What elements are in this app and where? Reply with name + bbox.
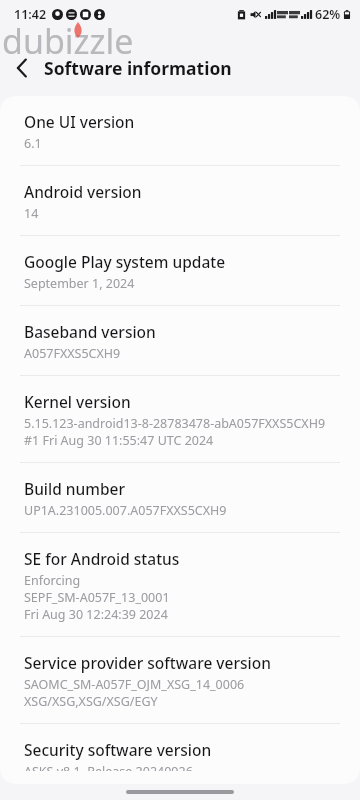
- staticText: dubizzle: [2, 18, 134, 64]
- staticText: Android version: [24, 181, 142, 202]
- button[interactable]: Service provider software version: [0, 637, 360, 723]
- button[interactable]: SE for Android status: [0, 533, 360, 636]
- staticText: Security software version: [24, 739, 212, 760]
- staticText: 14: [24, 205, 39, 222]
- staticText: XSG/XSG,XSG/XSG/EGY: [24, 693, 158, 710]
- staticText: Service provider software version: [24, 652, 271, 673]
- staticText: Fri Aug 30 12:24:39 2024: [24, 606, 168, 623]
- staticText: 11:42: [14, 6, 47, 23]
- staticText: September 1, 2024: [24, 275, 135, 292]
- staticText: 6.1: [24, 135, 42, 152]
- staticText: Google Play system update: [24, 251, 226, 272]
- staticText: Enforcing: [24, 572, 81, 589]
- staticText: Build number: [24, 478, 126, 499]
- staticText: ASKS v8.1 Release 20240926: [24, 763, 193, 771]
- staticText: SEPF_SM-A057F_13_0001: [24, 589, 170, 606]
- button[interactable]: Build number: [0, 463, 360, 532]
- staticText: A057FXXS5CXH9: [24, 345, 121, 362]
- button[interactable]: Google Play system update: [0, 236, 360, 305]
- staticText: 62%: [315, 6, 341, 23]
- staticText: #1 Fri Aug 30 11:55:47 UTC 2024: [24, 432, 214, 449]
- button[interactable]: Security software version: [0, 724, 360, 784]
- staticText: SAOMC_SM-A057F_OJM_XSG_14_0006: [24, 676, 245, 693]
- button[interactable]: Baseband version: [0, 306, 360, 375]
- staticText: Kernel version: [24, 391, 131, 412]
- button[interactable]: Android version: [0, 166, 360, 235]
- staticText: One UI version: [24, 111, 135, 132]
- button[interactable]: Navigate up: [0, 46, 44, 90]
- staticText: Baseband version: [24, 321, 156, 342]
- button[interactable]: One UI version: [0, 96, 360, 165]
- button[interactable]: Kernel version: [0, 376, 360, 462]
- staticText: SE for Android status: [24, 548, 180, 569]
- staticText: UP1A.231005.007.A057FXXS5CXH9: [24, 502, 227, 519]
- staticText: Software information: [44, 56, 232, 80]
- staticText: 5.15.123-android13-8-28783478-abA057FXXS…: [24, 415, 326, 432]
